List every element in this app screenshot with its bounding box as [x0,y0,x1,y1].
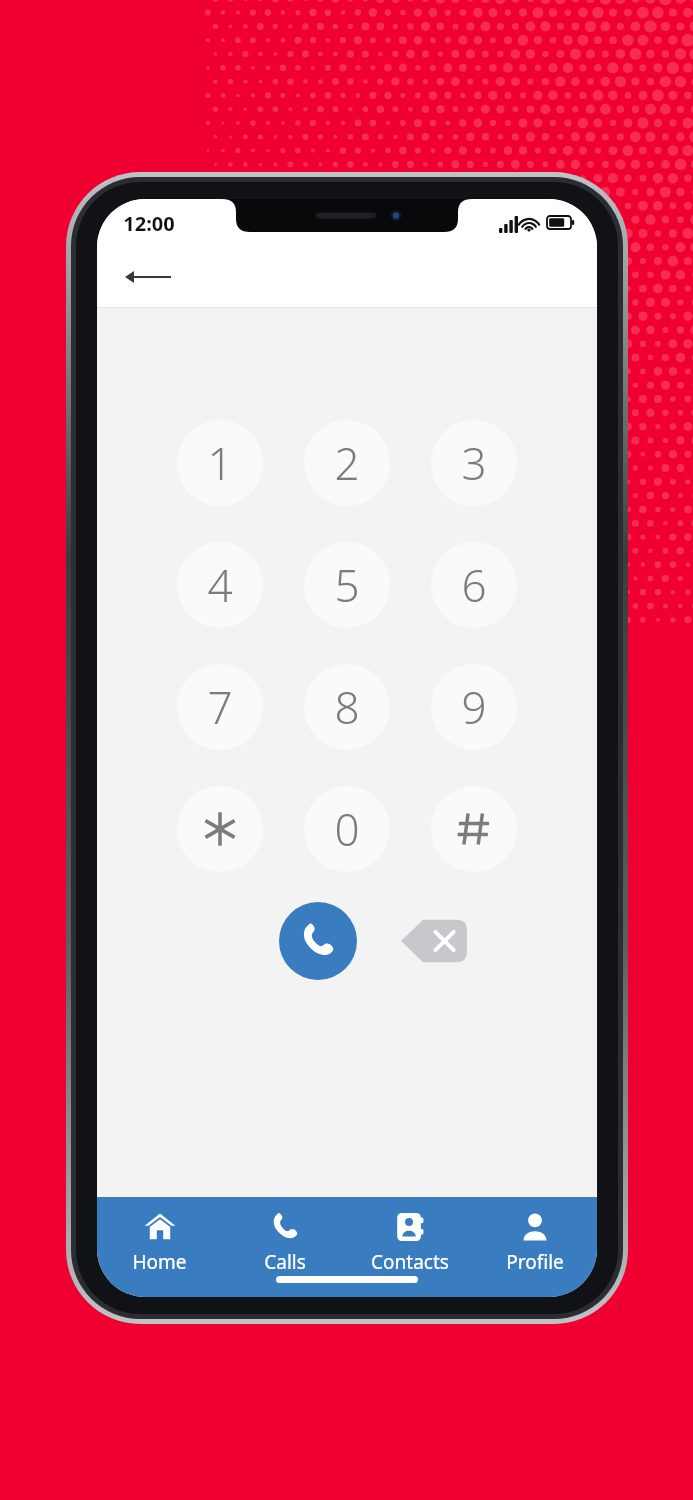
staticText: 6 [461,555,487,615]
staticText: Contacts [371,1249,449,1275]
button[interactable] [431,786,517,872]
button[interactable]: 7 [177,664,263,750]
staticText: Profile [506,1249,564,1275]
button[interactable]: 0 [304,786,390,872]
button[interactable]: 2 [304,420,390,506]
button[interactable]: Contacts [347,1211,472,1275]
staticText: 9 [461,677,487,737]
button[interactable]: 9 [431,664,517,750]
staticText: 8 [334,677,360,737]
staticText: 5 [334,555,360,615]
button[interactable]: Call [279,902,357,980]
button[interactable]: Profile [472,1211,597,1275]
button[interactable]: Back [121,255,177,299]
button[interactable]: 3 [431,420,517,506]
button[interactable] [177,786,263,872]
staticText: 0 [334,799,360,859]
button[interactable]: 1 [177,420,263,506]
staticText: Home [132,1249,187,1275]
button[interactable]: Home [97,1211,222,1275]
staticText: 12:00 [123,210,175,237]
button[interactable]: 5 [304,542,390,628]
button[interactable]: Backspace [401,918,467,964]
button[interactable]: 8 [304,664,390,750]
staticText: 2 [334,433,360,493]
staticText: Calls [264,1249,306,1275]
staticText: 1 [207,433,233,493]
button[interactable]: 4 [177,542,263,628]
staticText: 3 [461,433,487,493]
button[interactable]: Calls [222,1211,347,1275]
staticText: 7 [207,677,233,737]
button[interactable]: 6 [431,542,517,628]
staticText: 4 [207,555,233,615]
